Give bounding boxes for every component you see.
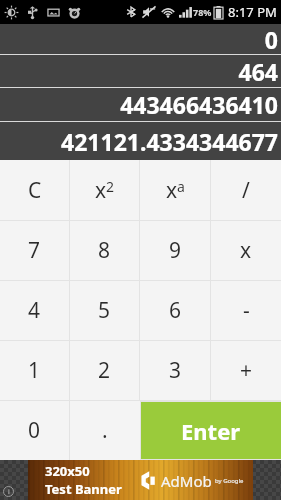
staticText: 320x50 [45, 462, 90, 480]
staticText: Enter [181, 416, 241, 446]
button[interactable]: C [0, 160, 69, 220]
staticText: 5 [98, 296, 111, 325]
staticText: 9 [169, 236, 182, 265]
button[interactable]: + [211, 341, 281, 400]
staticText: 6 [169, 296, 182, 325]
button[interactable]: Advertisement banner [0, 460, 281, 500]
staticText: Test Banner [45, 480, 122, 498]
staticText: 7 [28, 236, 41, 265]
button[interactable]: xa [140, 160, 210, 220]
staticText: 78% [193, 6, 212, 18]
staticText: AdMob [161, 471, 212, 491]
staticText: xa [166, 176, 185, 205]
button[interactable]: 3 [140, 341, 210, 400]
staticText: 0 [28, 416, 41, 445]
button[interactable]: 0 [0, 24, 281, 54]
staticText: 1 [28, 356, 41, 385]
staticText: / [242, 176, 250, 205]
button[interactable]: - [211, 281, 281, 340]
staticText: C [28, 176, 42, 205]
button[interactable]: 8 [70, 221, 139, 280]
button[interactable]: . [70, 401, 140, 460]
button[interactable]: 0 [0, 401, 69, 460]
staticText: 464 [238, 56, 278, 87]
staticText: 0 [264, 24, 278, 54]
button[interactable]: / [211, 160, 281, 220]
staticText: . [102, 416, 108, 445]
staticText: 3 [169, 356, 182, 385]
button[interactable]: 7 [0, 221, 69, 280]
staticText: 4 [28, 296, 41, 325]
staticText: by Google [215, 477, 244, 485]
button[interactable]: 1 [0, 341, 69, 400]
button[interactable]: 6 [140, 281, 210, 340]
staticText: 8:17 PM [228, 3, 277, 21]
button[interactable]: 9 [140, 221, 210, 280]
staticText: x [240, 236, 252, 265]
button[interactable]: 464 [0, 55, 281, 87]
button[interactable]: x [211, 221, 281, 280]
button[interactable]: x2 [70, 160, 139, 220]
staticText: i [8, 487, 10, 497]
button[interactable]: 2 [70, 341, 139, 400]
button[interactable]: Enter [141, 402, 281, 459]
button[interactable]: 4 [0, 281, 69, 340]
staticText: 421121.4334344677 [61, 126, 278, 157]
staticText: 8 [98, 236, 111, 265]
button[interactable]: 421121.4334344677 [0, 122, 281, 160]
button[interactable]: 5 [70, 281, 139, 340]
staticText: x2 [95, 176, 115, 205]
button[interactable]: 443466436410 [0, 88, 281, 121]
staticText: 2 [98, 356, 111, 385]
staticText: 443466436410 [120, 89, 278, 120]
staticText: - [243, 296, 250, 325]
staticText: + [240, 356, 253, 385]
